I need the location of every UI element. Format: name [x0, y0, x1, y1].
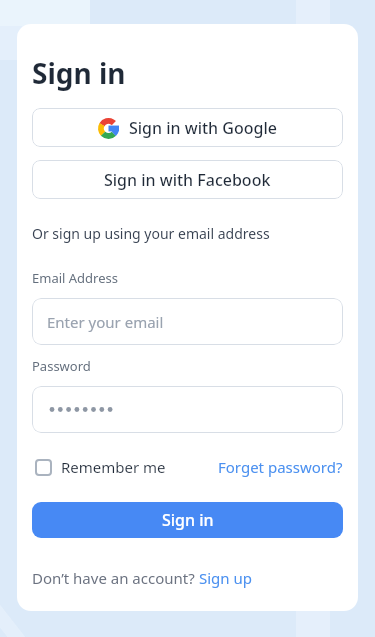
staticText: Enter your email: [47, 312, 164, 332]
button[interactable]: Sign in with Google: [32, 108, 343, 147]
staticText: Sign in with Facebook: [104, 169, 271, 191]
button[interactable]: Sign up: [199, 568, 252, 588]
button[interactable]: Enter your email: [32, 298, 343, 345]
staticText: Or sign up using your email address: [32, 224, 270, 243]
staticText: Sign in: [162, 509, 214, 531]
button[interactable]: [32, 386, 343, 433]
staticText: Sign in with Google: [129, 117, 277, 139]
button[interactable]: Forget password?: [218, 457, 343, 477]
button[interactable]: Sign in with Facebook: [32, 160, 343, 199]
button[interactable]: Sign in: [32, 502, 343, 538]
staticText: Password: [32, 357, 91, 375]
staticText: Remember me: [61, 457, 166, 477]
button[interactable]: [35, 459, 52, 476]
staticText: Don’t have an account?: [32, 568, 199, 588]
staticText: Email Address: [32, 269, 118, 287]
staticText: Sign in: [32, 54, 126, 92]
